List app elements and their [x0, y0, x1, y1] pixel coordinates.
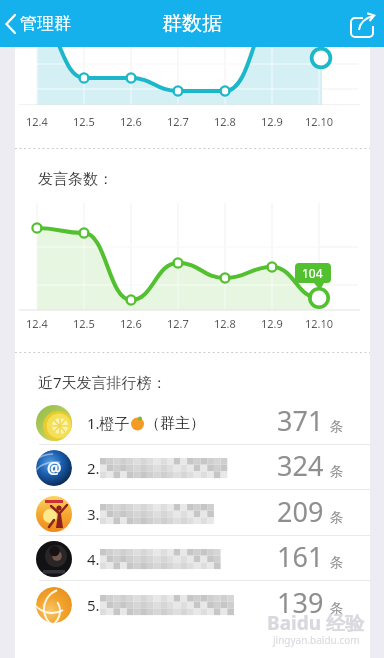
staticText: 12.6	[120, 114, 142, 129]
staticText: （群主）	[145, 414, 205, 433]
button[interactable]: 4.	[15, 536, 370, 581]
staticText: 12.10	[305, 114, 334, 129]
staticText: 12.7	[167, 316, 189, 331]
staticText: 5.	[87, 595, 100, 615]
staticText: 12.8	[214, 114, 236, 129]
staticText: 371	[277, 402, 324, 439]
staticText: 群数据	[162, 11, 222, 36]
staticText: 2.	[87, 458, 100, 478]
staticText: 条	[330, 600, 344, 617]
button[interactable]: 3.	[15, 491, 370, 536]
staticText: jingyan.baidu.com	[273, 633, 360, 647]
staticText: 条	[330, 509, 344, 526]
staticText: 12.4	[26, 316, 48, 331]
staticText: 161	[277, 538, 324, 575]
staticText: 1.橙子	[87, 413, 130, 433]
staticText: 12.10	[305, 316, 334, 331]
staticText: 4.	[87, 549, 100, 569]
button[interactable]	[350, 11, 376, 37]
staticText: Baidu 经验	[267, 610, 364, 636]
staticText: 12.6	[120, 316, 142, 331]
button[interactable]: @	[15, 445, 370, 490]
staticText: 3.	[87, 504, 100, 524]
staticText: 12.5	[73, 316, 95, 331]
staticText: 条	[330, 418, 344, 435]
staticText: 管理群	[20, 13, 71, 34]
staticText: 近7天发言排行榜：	[38, 372, 167, 392]
staticText: 12.9	[261, 114, 283, 129]
staticText: 12.5	[73, 114, 95, 129]
button[interactable]: 5.	[15, 582, 370, 627]
staticText: 12.4	[26, 114, 48, 129]
staticText: 12.7	[167, 114, 189, 129]
staticText: @	[47, 457, 62, 479]
staticText: 条	[330, 463, 344, 480]
button[interactable]: 管理群	[5, 13, 71, 34]
staticText: 条	[330, 554, 344, 571]
staticText: 12.8	[214, 316, 236, 331]
staticText: 12.9	[261, 316, 283, 331]
staticText: 139	[277, 584, 324, 621]
staticText: 324	[277, 447, 324, 484]
button[interactable]: 1.橙子	[15, 400, 370, 445]
staticText: 104	[302, 265, 323, 281]
staticText: 209	[277, 493, 324, 530]
staticText: 发言条数：	[38, 170, 113, 189]
